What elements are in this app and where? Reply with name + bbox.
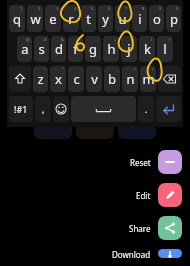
staticText: * <box>78 37 81 42</box>
button[interactable]: y <box>98 5 113 32</box>
staticText: , <box>42 103 45 115</box>
button[interactable]: g <box>85 36 101 62</box>
button[interactable]: j <box>121 36 137 62</box>
button[interactable]: m <box>140 66 156 92</box>
staticText: @ <box>26 37 30 42</box>
button[interactable]: f <box>68 36 83 62</box>
staticText: 8 <box>142 6 145 11</box>
button[interactable]: Reset <box>130 150 182 174</box>
staticText: ! <box>44 67 46 72</box>
staticText: / <box>134 67 136 72</box>
staticText: 4 <box>74 6 77 11</box>
staticText: t <box>86 10 91 28</box>
staticText: 5 <box>91 6 94 11</box>
staticText: f <box>73 40 78 58</box>
staticText: ; <box>116 67 118 72</box>
button[interactable]: e <box>45 5 61 32</box>
button[interactable]: q <box>9 5 25 32</box>
button[interactable]: t <box>81 5 96 32</box>
staticText: !#1 <box>14 103 28 115</box>
button[interactable]: l <box>157 36 173 62</box>
staticText: " <box>62 67 64 72</box>
staticText: g <box>89 40 97 58</box>
button[interactable]: Backspace <box>158 66 181 92</box>
staticText: Edit <box>136 190 151 201</box>
button[interactable] <box>76 127 114 139</box>
button[interactable] <box>34 127 72 139</box>
button[interactable]: . <box>138 96 154 122</box>
staticText: j <box>127 40 131 58</box>
button[interactable]: n <box>122 66 138 92</box>
staticText: 1 <box>20 6 23 11</box>
staticText: c <box>73 70 80 88</box>
staticText: a <box>21 40 29 58</box>
button[interactable]: x <box>50 66 66 92</box>
staticText: v <box>91 70 98 88</box>
staticText: n <box>126 70 135 88</box>
staticText: Download <box>112 249 151 258</box>
button[interactable]: Download <box>112 249 182 258</box>
staticText: . <box>145 103 148 115</box>
staticText: 7 <box>125 6 128 11</box>
staticText: d <box>55 40 63 58</box>
staticText: 6 <box>108 6 111 11</box>
button[interactable]: a <box>17 36 32 62</box>
staticText: Reset <box>130 157 151 168</box>
staticText: h <box>107 40 116 58</box>
staticText: 0 <box>176 6 179 11</box>
staticText: - <box>97 37 99 42</box>
staticText: & <box>61 37 64 42</box>
staticText: l <box>163 40 167 58</box>
staticText: x <box>55 70 62 88</box>
button[interactable]: d <box>51 36 66 62</box>
button[interactable]: v <box>86 66 102 92</box>
button[interactable]: i <box>132 5 147 32</box>
button[interactable]: Enter <box>156 96 181 122</box>
button[interactable]: Emoji <box>53 96 69 122</box>
button[interactable] <box>118 127 156 139</box>
button[interactable]: o <box>149 5 164 32</box>
staticText: q <box>13 10 21 28</box>
staticText: : <box>98 67 100 72</box>
button[interactable]: , <box>35 96 51 122</box>
button[interactable]: Edit <box>136 183 182 207</box>
staticText: y <box>102 10 109 28</box>
staticText: u <box>118 10 127 28</box>
staticText: + <box>114 37 117 42</box>
staticText: 2 <box>38 6 41 11</box>
staticText: = <box>132 37 135 42</box>
staticText: ' <box>81 67 82 72</box>
staticText: # <box>44 37 47 42</box>
staticText: k <box>144 40 151 58</box>
staticText: z <box>37 70 44 88</box>
staticText: 3 <box>56 6 59 11</box>
button[interactable]: Share <box>129 216 182 240</box>
button[interactable]: Space <box>71 96 136 122</box>
staticText: ( <box>151 37 153 42</box>
button[interactable]: Shift <box>9 66 31 92</box>
button[interactable]: z <box>33 66 48 92</box>
staticText: e <box>49 10 57 28</box>
staticText: w <box>30 10 41 28</box>
staticText: o <box>153 10 161 28</box>
staticText: ) <box>169 37 171 42</box>
button[interactable]: r <box>63 5 79 32</box>
staticText: Share <box>129 223 151 234</box>
staticText: r <box>68 10 74 28</box>
staticText: i <box>138 10 142 28</box>
button[interactable]: !#1 <box>9 96 33 122</box>
button[interactable]: u <box>115 5 130 32</box>
button[interactable]: s <box>34 36 49 62</box>
staticText: s <box>38 40 45 58</box>
staticText: b <box>108 70 116 88</box>
staticText: 9 <box>159 6 162 11</box>
button[interactable]: w <box>27 5 43 32</box>
button[interactable]: h <box>103 36 119 62</box>
button[interactable]: c <box>68 66 84 92</box>
button[interactable]: p <box>166 5 181 32</box>
staticText: p <box>170 10 178 28</box>
staticText: ? <box>152 67 154 72</box>
staticText: m <box>142 70 155 88</box>
button[interactable]: b <box>104 66 120 92</box>
button[interactable]: k <box>139 36 155 62</box>
